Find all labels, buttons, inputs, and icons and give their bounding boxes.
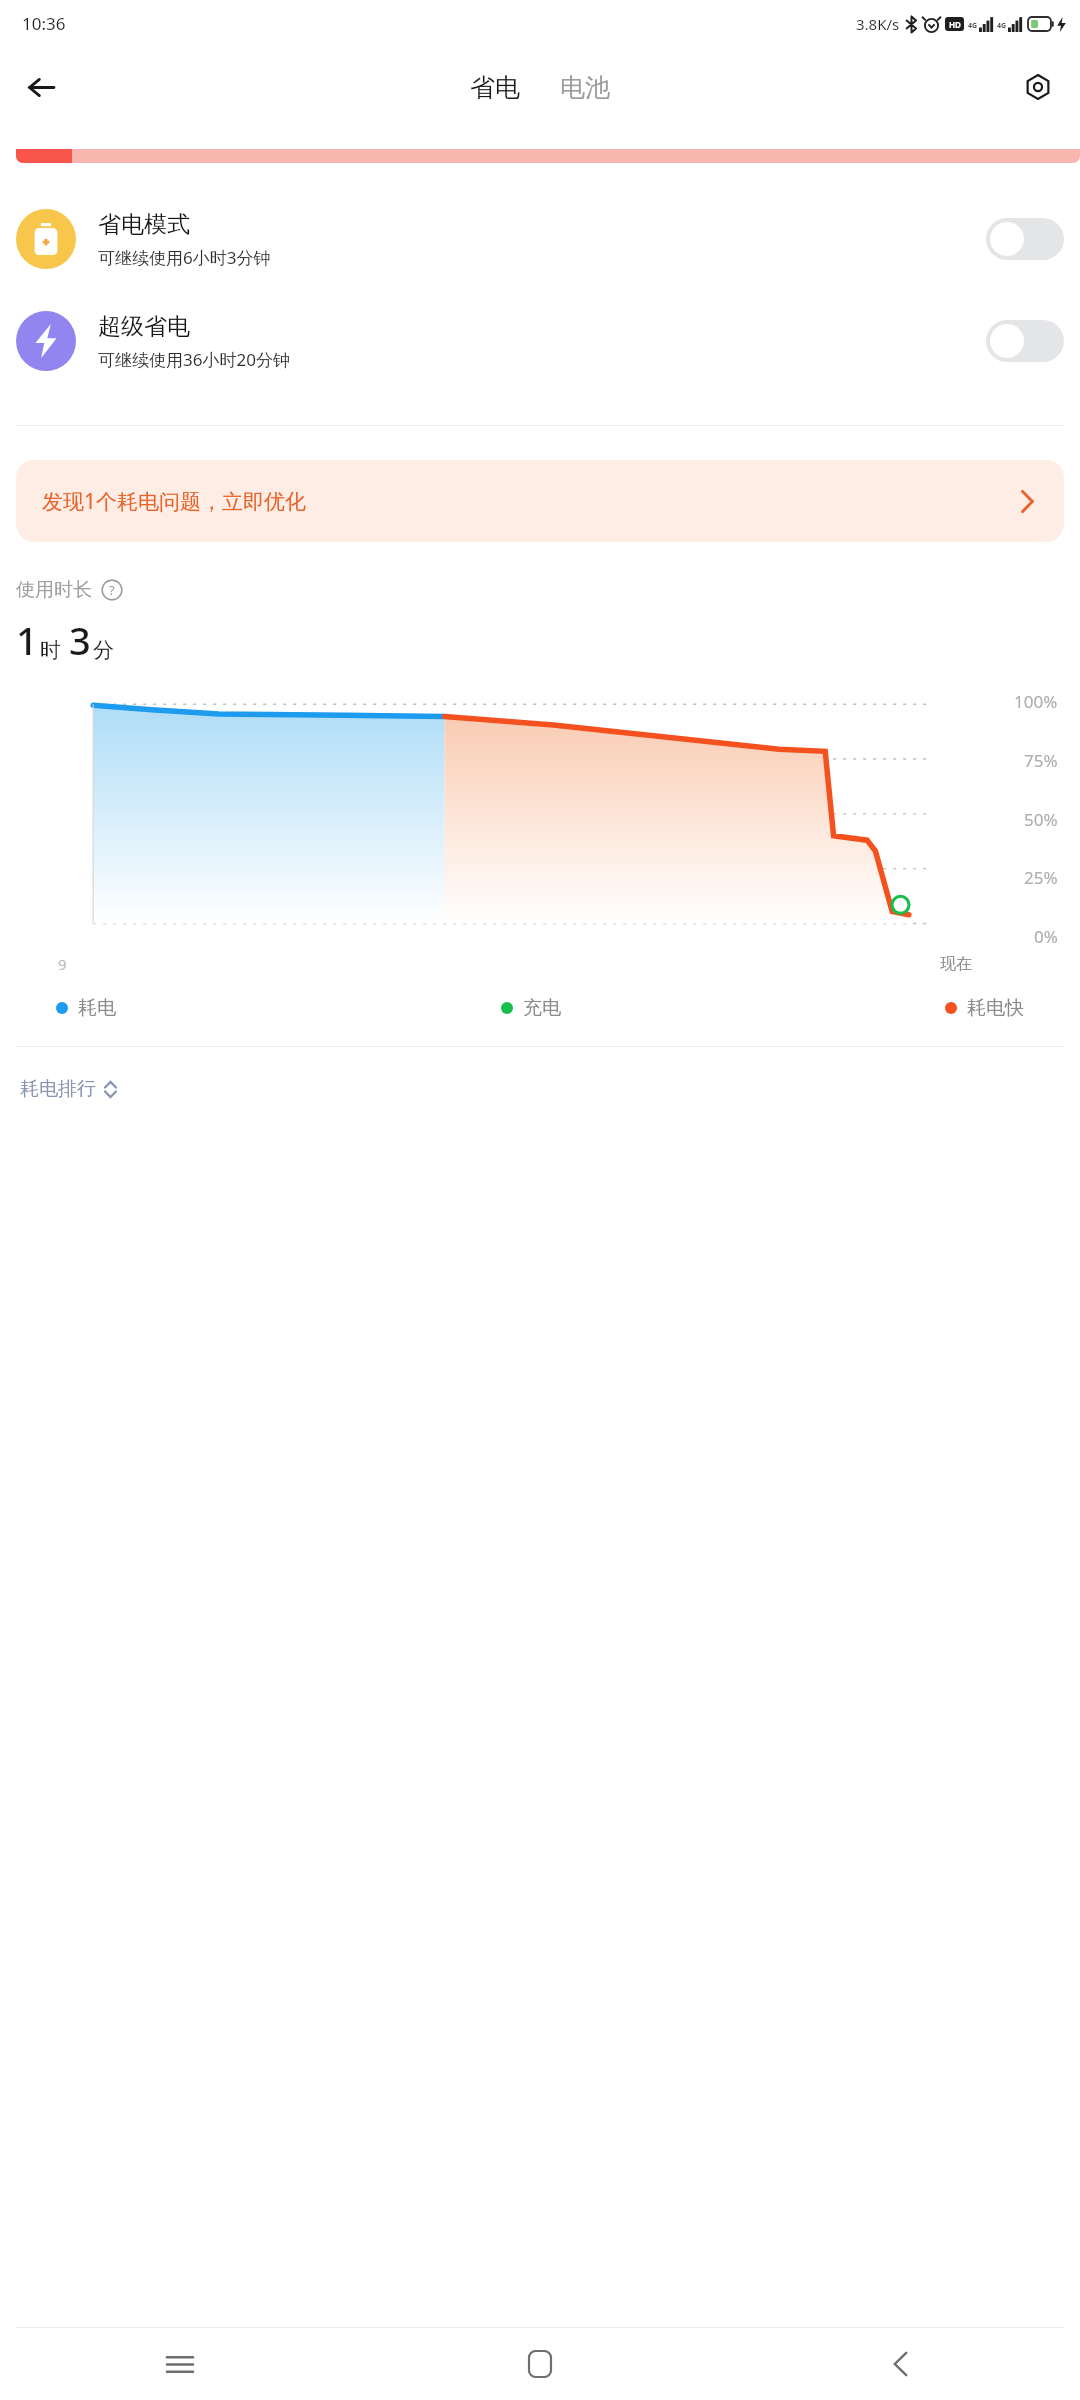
button[interactable]: 耗电排行 (16, 1073, 121, 1105)
staticText: 可继续使用6小时3分钟 (98, 246, 271, 269)
staticText: HD (949, 19, 961, 30)
staticText: 时 (40, 637, 61, 663)
staticText: 耗电 (78, 996, 116, 1020)
staticText: 3.8K/s (856, 14, 900, 34)
staticText: 75% (1024, 749, 1058, 772)
staticText: 3 (69, 614, 91, 666)
button[interactable]: Settings (1008, 57, 1068, 117)
staticText: 超级省电 (98, 312, 190, 341)
staticText: 现在 (940, 954, 972, 974)
button[interactable]: 耗电 (52, 992, 120, 1024)
staticText: 发现1个耗电问题，立即优化 (42, 487, 307, 516)
button[interactable]: 电池 (554, 68, 616, 107)
button[interactable]: Home (360, 2328, 720, 2400)
staticText: 省电模式 (98, 210, 190, 239)
button[interactable]: 充电 (497, 992, 565, 1024)
button[interactable]: Back (10, 56, 72, 118)
staticText: 100% (1014, 690, 1058, 713)
staticText: ? (109, 581, 115, 599)
staticText: 0% (1034, 925, 1058, 948)
staticText: 25% (1024, 866, 1058, 889)
staticText: 省电 (470, 72, 520, 103)
button[interactable]: 耗电快 (941, 992, 1028, 1024)
staticText: 耗电排行 (20, 1077, 96, 1101)
staticText: 使用时长 (16, 578, 92, 602)
staticText: 耗电快 (967, 996, 1024, 1020)
staticText: 50% (1024, 808, 1058, 831)
button[interactable]: 发现1个耗电问题，立即优化 (16, 460, 1064, 542)
button[interactable]: 省电 (464, 68, 526, 107)
staticText: 分 (93, 637, 114, 663)
button[interactable]: Recents (0, 2328, 360, 2400)
staticText: 4G (997, 21, 1007, 31)
button[interactable]: Back (720, 2328, 1080, 2400)
button[interactable]: Toggle (986, 320, 1064, 362)
staticText: 10:36 (22, 12, 66, 35)
staticText: 充电 (523, 996, 561, 1020)
button[interactable]: 超级省电 (0, 305, 1080, 377)
staticText: 4G (968, 21, 978, 31)
staticText: 9 (58, 954, 67, 974)
button[interactable]: Help (101, 579, 123, 601)
staticText: 电池 (560, 72, 610, 103)
button[interactable]: Toggle (986, 218, 1064, 260)
staticText: 1 (16, 614, 38, 666)
button[interactable]: 省电模式 (0, 203, 1080, 275)
staticText: 可继续使用36小时20分钟 (98, 348, 290, 371)
